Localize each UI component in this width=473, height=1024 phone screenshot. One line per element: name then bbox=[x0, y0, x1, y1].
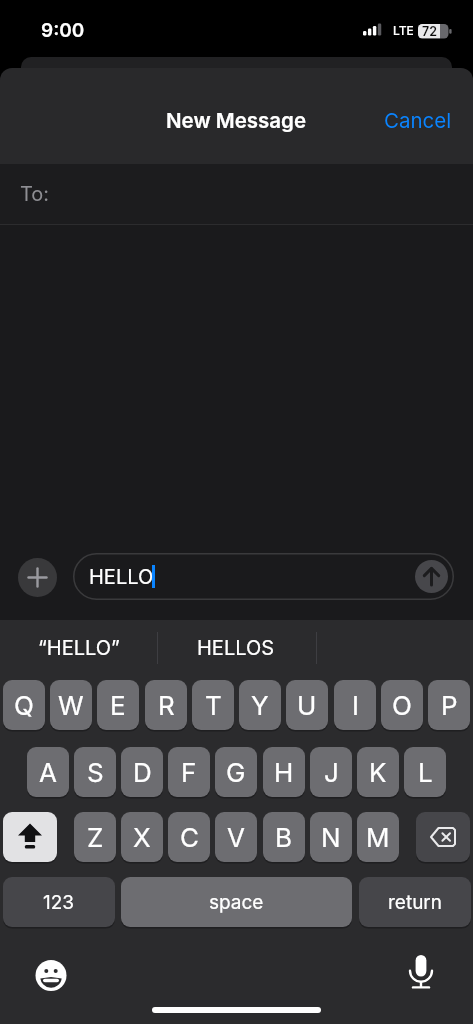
staticText: HELLOS bbox=[197, 636, 275, 660]
staticText: F bbox=[181, 757, 197, 788]
staticText: V bbox=[227, 822, 245, 853]
staticText: O bbox=[392, 690, 412, 721]
staticText: To: bbox=[20, 182, 50, 206]
staticText: T bbox=[205, 690, 222, 721]
staticText: 9:00 bbox=[41, 19, 85, 42]
staticText: R bbox=[158, 690, 175, 721]
staticText: S bbox=[87, 757, 104, 788]
staticText: J bbox=[324, 757, 339, 788]
staticText: I bbox=[352, 690, 359, 721]
staticText: return bbox=[388, 891, 443, 914]
staticText: HELLO bbox=[89, 565, 154, 589]
staticText: D bbox=[133, 757, 152, 788]
staticText: M bbox=[366, 822, 390, 853]
staticText: N bbox=[321, 822, 341, 853]
staticText: Q bbox=[14, 690, 34, 721]
staticText: New Message bbox=[166, 108, 307, 133]
staticText: L bbox=[418, 757, 433, 788]
staticText: 123 bbox=[43, 891, 75, 914]
staticText: U bbox=[297, 690, 317, 721]
staticText: K bbox=[369, 757, 387, 788]
staticText: LTE bbox=[393, 23, 414, 38]
staticText: X bbox=[133, 822, 151, 853]
staticText: G bbox=[226, 757, 246, 788]
staticText: “HELLO” bbox=[38, 636, 120, 660]
staticText: C bbox=[180, 822, 199, 853]
staticText: W bbox=[58, 690, 84, 721]
staticText: 72 bbox=[422, 24, 437, 39]
staticText: Cancel bbox=[384, 108, 452, 133]
staticText: Y bbox=[251, 690, 269, 721]
staticText: P bbox=[441, 690, 458, 721]
staticText: A bbox=[39, 757, 57, 788]
staticText: B bbox=[275, 822, 293, 853]
staticText: Z bbox=[87, 822, 104, 853]
staticText: space bbox=[209, 891, 264, 914]
staticText: E bbox=[110, 690, 126, 721]
staticText: H bbox=[274, 757, 294, 788]
